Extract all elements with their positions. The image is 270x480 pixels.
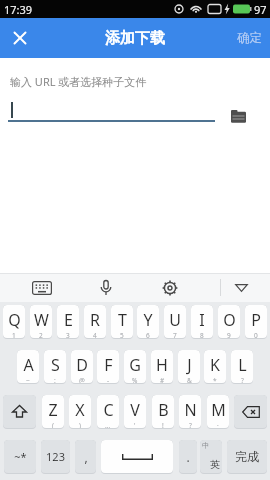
button[interactable] <box>20 273 64 302</box>
staticText: V <box>130 399 140 421</box>
button[interactable]: C <box>97 395 119 429</box>
staticText: 6 <box>146 331 150 338</box>
button[interactable]: 确定 <box>229 18 270 58</box>
staticText: T <box>118 309 127 331</box>
button[interactable]: Y <box>137 305 159 339</box>
staticText: 完成 <box>235 449 259 464</box>
staticText: R <box>90 309 100 331</box>
staticText: * <box>213 376 217 383</box>
button[interactable]: T <box>111 305 133 339</box>
staticText: 中 <box>202 441 209 450</box>
staticText: C <box>103 399 114 421</box>
staticText: L <box>238 354 247 376</box>
button[interactable]: J <box>178 350 200 384</box>
staticText: … <box>105 421 111 428</box>
staticText: J <box>187 354 192 376</box>
staticText: 9 <box>227 331 231 338</box>
button[interactable]: V <box>124 395 146 429</box>
staticText: ? <box>189 421 192 428</box>
staticText: I <box>199 309 205 331</box>
staticText: Z <box>48 399 58 421</box>
button[interactable]: D <box>71 350 93 384</box>
staticText: K <box>210 354 220 376</box>
staticText: A <box>23 354 34 376</box>
staticText: M <box>211 399 226 421</box>
button[interactable]: G <box>124 350 146 384</box>
button[interactable]: . <box>179 440 197 474</box>
staticText: 输入 URL 或者选择种子文件 <box>10 74 147 89</box>
staticText: Q <box>8 309 21 331</box>
button[interactable]: F <box>97 350 119 384</box>
staticText: D <box>76 354 88 376</box>
staticText: 1 <box>12 331 16 338</box>
button[interactable]: S <box>44 350 66 384</box>
button[interactable]: X <box>69 395 91 429</box>
staticText: X <box>75 399 85 421</box>
staticText: B <box>158 399 169 421</box>
staticText: # <box>160 376 165 383</box>
staticText: 0 <box>254 331 258 338</box>
button[interactable]: M <box>207 395 229 429</box>
button[interactable] <box>226 104 250 128</box>
button[interactable]: Q <box>3 305 25 339</box>
button[interactable]: Z <box>42 395 64 429</box>
button[interactable]: B <box>152 395 174 429</box>
staticText: 添加下载 <box>105 29 165 48</box>
staticText: ! <box>162 421 164 428</box>
button[interactable]: N <box>179 395 201 429</box>
staticText: F <box>104 354 113 376</box>
staticText: , <box>84 449 88 465</box>
staticText: ~* <box>14 449 27 464</box>
staticText: 3 <box>66 331 70 338</box>
staticText: 4 <box>93 331 97 338</box>
staticText: ) <box>79 421 81 428</box>
button[interactable] <box>234 395 267 429</box>
button[interactable]: K <box>204 350 226 384</box>
staticText: 8 <box>200 331 204 338</box>
button[interactable]: U <box>164 305 186 339</box>
button[interactable] <box>3 395 36 429</box>
staticText: ? <box>241 376 244 383</box>
staticText: N <box>184 399 197 421</box>
staticText: · <box>217 421 219 428</box>
staticText: - <box>107 376 110 383</box>
staticText: 7 <box>173 331 177 338</box>
staticText: E <box>64 309 73 331</box>
staticText: ( <box>52 421 54 428</box>
button[interactable] <box>219 273 263 302</box>
staticText: : <box>54 376 56 383</box>
button[interactable] <box>148 273 192 302</box>
button[interactable]: H <box>151 350 173 384</box>
staticText: @ <box>79 376 85 383</box>
button[interactable]: E <box>57 305 79 339</box>
button[interactable]: O <box>218 305 240 339</box>
staticText: 英 <box>210 458 220 471</box>
staticText: U <box>169 309 181 331</box>
staticText: 97 <box>254 2 267 17</box>
button[interactable] <box>0 18 40 58</box>
staticText: 确定 <box>237 30 262 46</box>
staticText: 5 <box>120 331 124 338</box>
button[interactable] <box>101 440 173 474</box>
button[interactable]: A <box>17 350 39 384</box>
button[interactable]: I <box>191 305 213 339</box>
staticText: ~ <box>26 376 30 383</box>
button[interactable]: 123 <box>41 440 70 474</box>
button[interactable]: L <box>231 350 253 384</box>
staticText: & <box>187 376 192 383</box>
staticText: 2 <box>39 331 43 338</box>
button[interactable]: R <box>84 305 106 339</box>
button[interactable] <box>84 273 128 302</box>
button[interactable]: 中 <box>200 440 222 474</box>
button[interactable]: 完成 <box>227 440 267 474</box>
button[interactable]: P <box>245 305 267 339</box>
staticText: ' <box>134 421 136 428</box>
button[interactable]: ~* <box>4 440 36 474</box>
button[interactable]: , <box>75 440 96 474</box>
staticText: 17:39 <box>4 2 33 17</box>
staticText: % <box>132 376 138 383</box>
button[interactable]: W <box>30 305 52 339</box>
staticText: . <box>186 449 190 465</box>
staticText: O <box>223 309 236 331</box>
staticText: Y <box>143 309 153 331</box>
